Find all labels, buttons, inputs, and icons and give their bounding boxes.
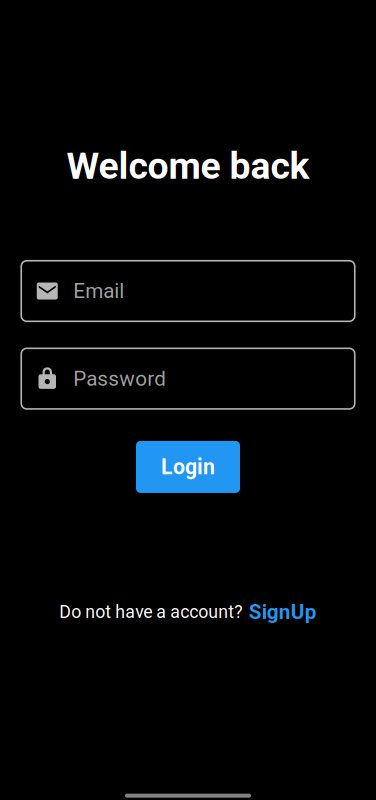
staticText: Password bbox=[73, 366, 166, 391]
staticText: Welcome back bbox=[66, 144, 309, 188]
button[interactable]: SignUp bbox=[249, 600, 317, 624]
button[interactable]: Login bbox=[136, 441, 240, 493]
button[interactable]: Email bbox=[21, 261, 355, 321]
staticText: Do not have a account? bbox=[59, 602, 242, 622]
staticText: Email bbox=[73, 279, 124, 303]
staticText: Login bbox=[161, 454, 215, 479]
staticText: SignUp bbox=[249, 600, 317, 624]
button[interactable]: Password bbox=[21, 348, 355, 409]
